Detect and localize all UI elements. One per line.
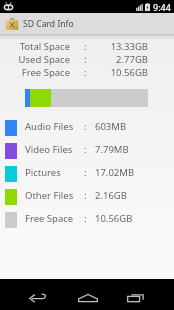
staticText: 7.79MB (95, 143, 129, 156)
button[interactable]: Recents (116, 279, 174, 310)
staticText: : (84, 40, 87, 53)
staticText: 10.56GB (95, 212, 133, 225)
button[interactable]: Back (0, 279, 58, 310)
staticText: Audio Files (25, 120, 74, 133)
staticText: : (84, 166, 87, 179)
button[interactable]: Other Files (0, 189, 174, 212)
staticText: Used Space (0, 53, 70, 66)
staticText: 13.33GB (87, 40, 148, 53)
staticText: Total Space (0, 40, 70, 53)
staticText: Free Space (0, 66, 70, 79)
staticText: 2.16GB (95, 189, 127, 202)
staticText: Video Files (25, 143, 73, 156)
button[interactable]: Free Space (0, 212, 174, 235)
staticText: Other Files (25, 189, 74, 202)
staticText: 9:44 (153, 1, 171, 13)
staticText: 17.02MB (95, 166, 135, 179)
button[interactable]: Pictures (0, 166, 174, 189)
staticText: : (84, 143, 87, 156)
staticText: 603MB (95, 120, 127, 133)
staticText: 2.77GB (87, 53, 148, 66)
button[interactable]: SD Card Info (0, 13, 174, 34)
button[interactable]: Video Files (0, 143, 174, 166)
button[interactable]: Home (58, 279, 116, 310)
staticText: SD Card Info (23, 18, 74, 30)
staticText: : (84, 120, 87, 133)
staticText: : (84, 189, 87, 202)
button[interactable]: Audio Files (0, 120, 174, 143)
staticText: : (84, 53, 87, 66)
staticText: 10.56GB (87, 66, 148, 79)
staticText: : (84, 66, 87, 79)
staticText: : (84, 212, 87, 225)
staticText: Free Space (25, 212, 74, 225)
staticText: Pictures (25, 166, 61, 179)
